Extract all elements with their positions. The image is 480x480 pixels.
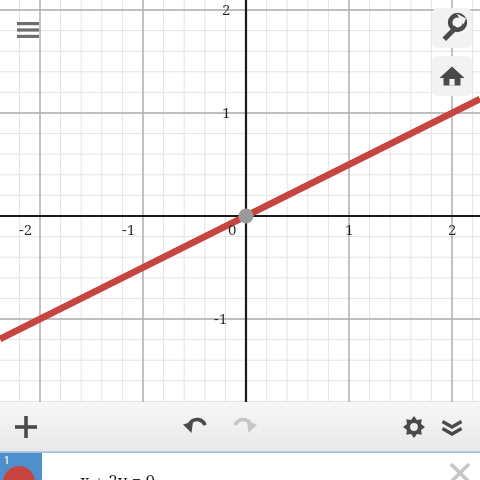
staticText: 0 [228,219,237,239]
staticText: 1 [345,219,354,239]
button[interactable]: Home [432,56,472,96]
button[interactable]: x + 2y = 0 [42,453,480,480]
button[interactable]: Redo [225,409,261,445]
button[interactable]: Collapse [434,409,470,445]
staticText: -1 [214,308,228,328]
button[interactable]: Add expression [8,409,44,445]
staticText: -1 [122,219,136,239]
button[interactable]: Menu [10,12,46,48]
staticText: 2 [222,0,231,19]
staticText: x + 2y = 0 [80,469,156,480]
button[interactable]: Delete expression [440,453,480,480]
staticText: 1 [4,453,10,467]
button[interactable]: 1 [0,453,42,480]
staticText: -2 [19,219,33,239]
staticText: 2 [448,219,457,239]
button[interactable]: Graph settings [396,409,432,445]
button[interactable]: Settings [432,8,472,48]
staticText: 1 [222,102,231,122]
button[interactable]: Undo [179,409,215,445]
